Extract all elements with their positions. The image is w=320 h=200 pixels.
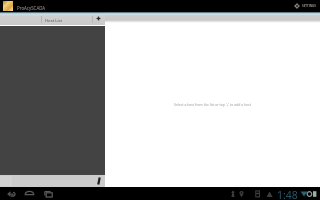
button[interactable]: Notification xyxy=(230,190,236,198)
staticText: 1:48 xyxy=(277,188,298,200)
button[interactable]: Home xyxy=(24,189,36,198)
button[interactable]: More options xyxy=(93,175,105,187)
button[interactable]: SETTINGS xyxy=(294,0,316,12)
staticText: SETTINGS xyxy=(302,4,316,8)
staticText: ProAcySCADA xyxy=(17,5,46,11)
button[interactable]: Device xyxy=(254,190,261,198)
button[interactable]: Back xyxy=(6,189,18,198)
button[interactable]: Recents xyxy=(43,189,55,198)
button[interactable]: Wi-Fi xyxy=(300,190,308,198)
button[interactable]: Location xyxy=(238,190,245,198)
button[interactable]: Status xyxy=(306,190,313,198)
button[interactable]: Add host xyxy=(92,13,104,24)
button[interactable]: 1:48 xyxy=(277,188,298,200)
staticText: Host List xyxy=(45,18,63,24)
button[interactable]: Warning xyxy=(266,190,274,198)
button[interactable]: Battery xyxy=(312,190,318,198)
staticText: Select a host from the list or tap '+' t… xyxy=(174,102,251,107)
